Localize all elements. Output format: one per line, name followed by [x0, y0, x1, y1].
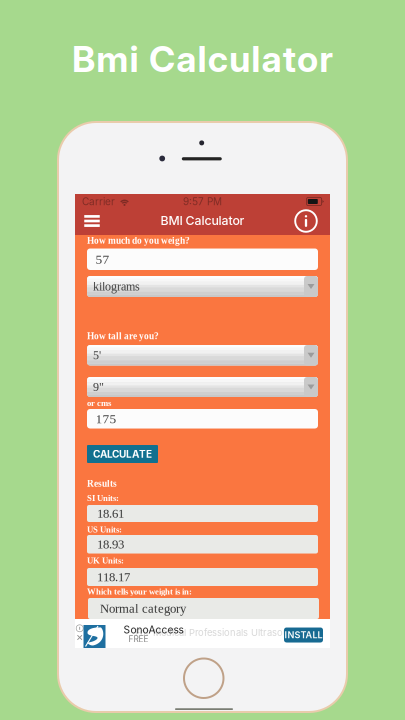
staticText: BMI Calculator	[160, 213, 244, 228]
staticText: 18.61	[97, 506, 124, 520]
staticText: US Units:	[87, 525, 122, 534]
staticText: How tall are you?	[87, 331, 159, 341]
staticText: 5'	[93, 349, 101, 362]
staticText: SonoAccess	[123, 624, 183, 636]
staticText: UK Units:	[87, 556, 124, 565]
staticText: 175	[95, 411, 116, 426]
button[interactable]: INSTALL	[284, 627, 323, 642]
staticText: Bmi Calculator	[72, 37, 333, 81]
staticText: 9"	[93, 380, 104, 394]
staticText: Which tells your weight is in:	[87, 587, 192, 596]
staticText: CALCULATE	[93, 448, 152, 460]
button[interactable]: Menu	[79, 208, 105, 234]
staticText: INSTALL	[284, 629, 322, 640]
staticText: 18.93	[97, 537, 124, 551]
button[interactable]: CALCULATE	[87, 445, 158, 463]
staticText: FREE	[128, 634, 148, 644]
button[interactable]: Info	[293, 208, 319, 234]
staticText: How much do you weigh?	[87, 235, 190, 246]
button[interactable]: 5'	[87, 345, 318, 365]
button[interactable]: kilograms	[87, 276, 318, 297]
staticText: Normal category	[100, 601, 186, 615]
staticText: or cms	[87, 398, 111, 408]
staticText: 118.17	[97, 570, 130, 584]
staticText: kilograms	[93, 280, 140, 293]
staticText: Results	[87, 478, 117, 489]
staticText: Carrier	[82, 195, 115, 208]
staticText: 9:57 PM	[183, 195, 222, 208]
staticText: For Medical Professionals Ultrasound Res…	[135, 627, 325, 638]
button[interactable]: 9"	[87, 377, 318, 397]
staticText: SI Units:	[87, 493, 119, 503]
staticText: 57	[95, 252, 109, 267]
